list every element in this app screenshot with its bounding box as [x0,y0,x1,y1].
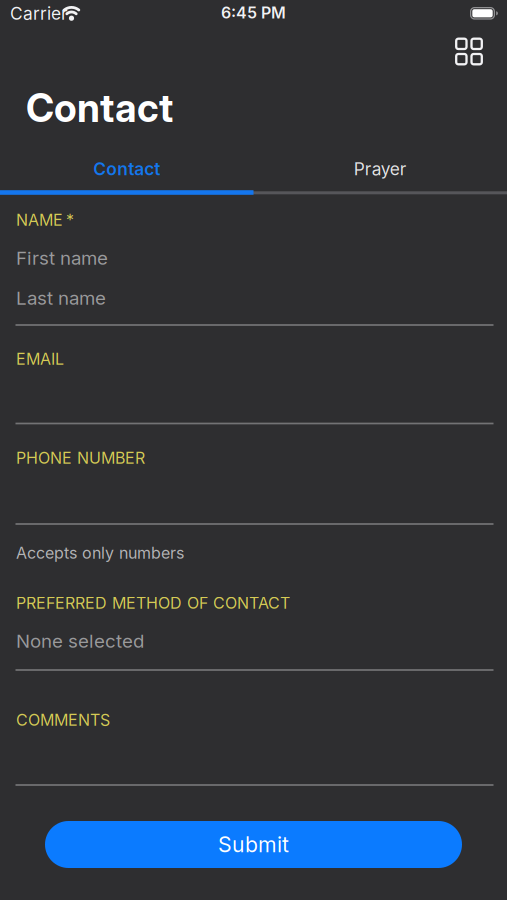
staticText: None selected [16,630,144,652]
staticText: PREFERRED METHOD OF CONTACT [16,594,290,612]
staticText: Prayer [354,159,407,179]
staticText: PHONE NUMBER [16,449,145,467]
staticText: Contact [93,159,160,179]
button[interactable]: Last name [0,278,507,318]
staticText: Contact [26,85,173,131]
staticText: Accepts only numbers [16,544,184,562]
button[interactable]: Contact [0,149,253,189]
button[interactable]: Submit [45,821,462,868]
staticText: Submit [218,832,289,857]
staticText: Last name [16,287,106,309]
button[interactable]: Apps [447,31,491,71]
staticText: COMMENTS [16,711,110,729]
staticText: Carrier [10,3,68,24]
staticText: 6:45 PM [221,3,286,22]
button[interactable]: Prayer [254,149,507,189]
button[interactable]: First name [0,238,507,278]
staticText: EMAIL [16,350,64,368]
staticText: First name [16,247,108,269]
staticText: * [66,211,74,229]
button[interactable]: None selected [0,621,507,661]
staticText: NAME [16,211,63,229]
